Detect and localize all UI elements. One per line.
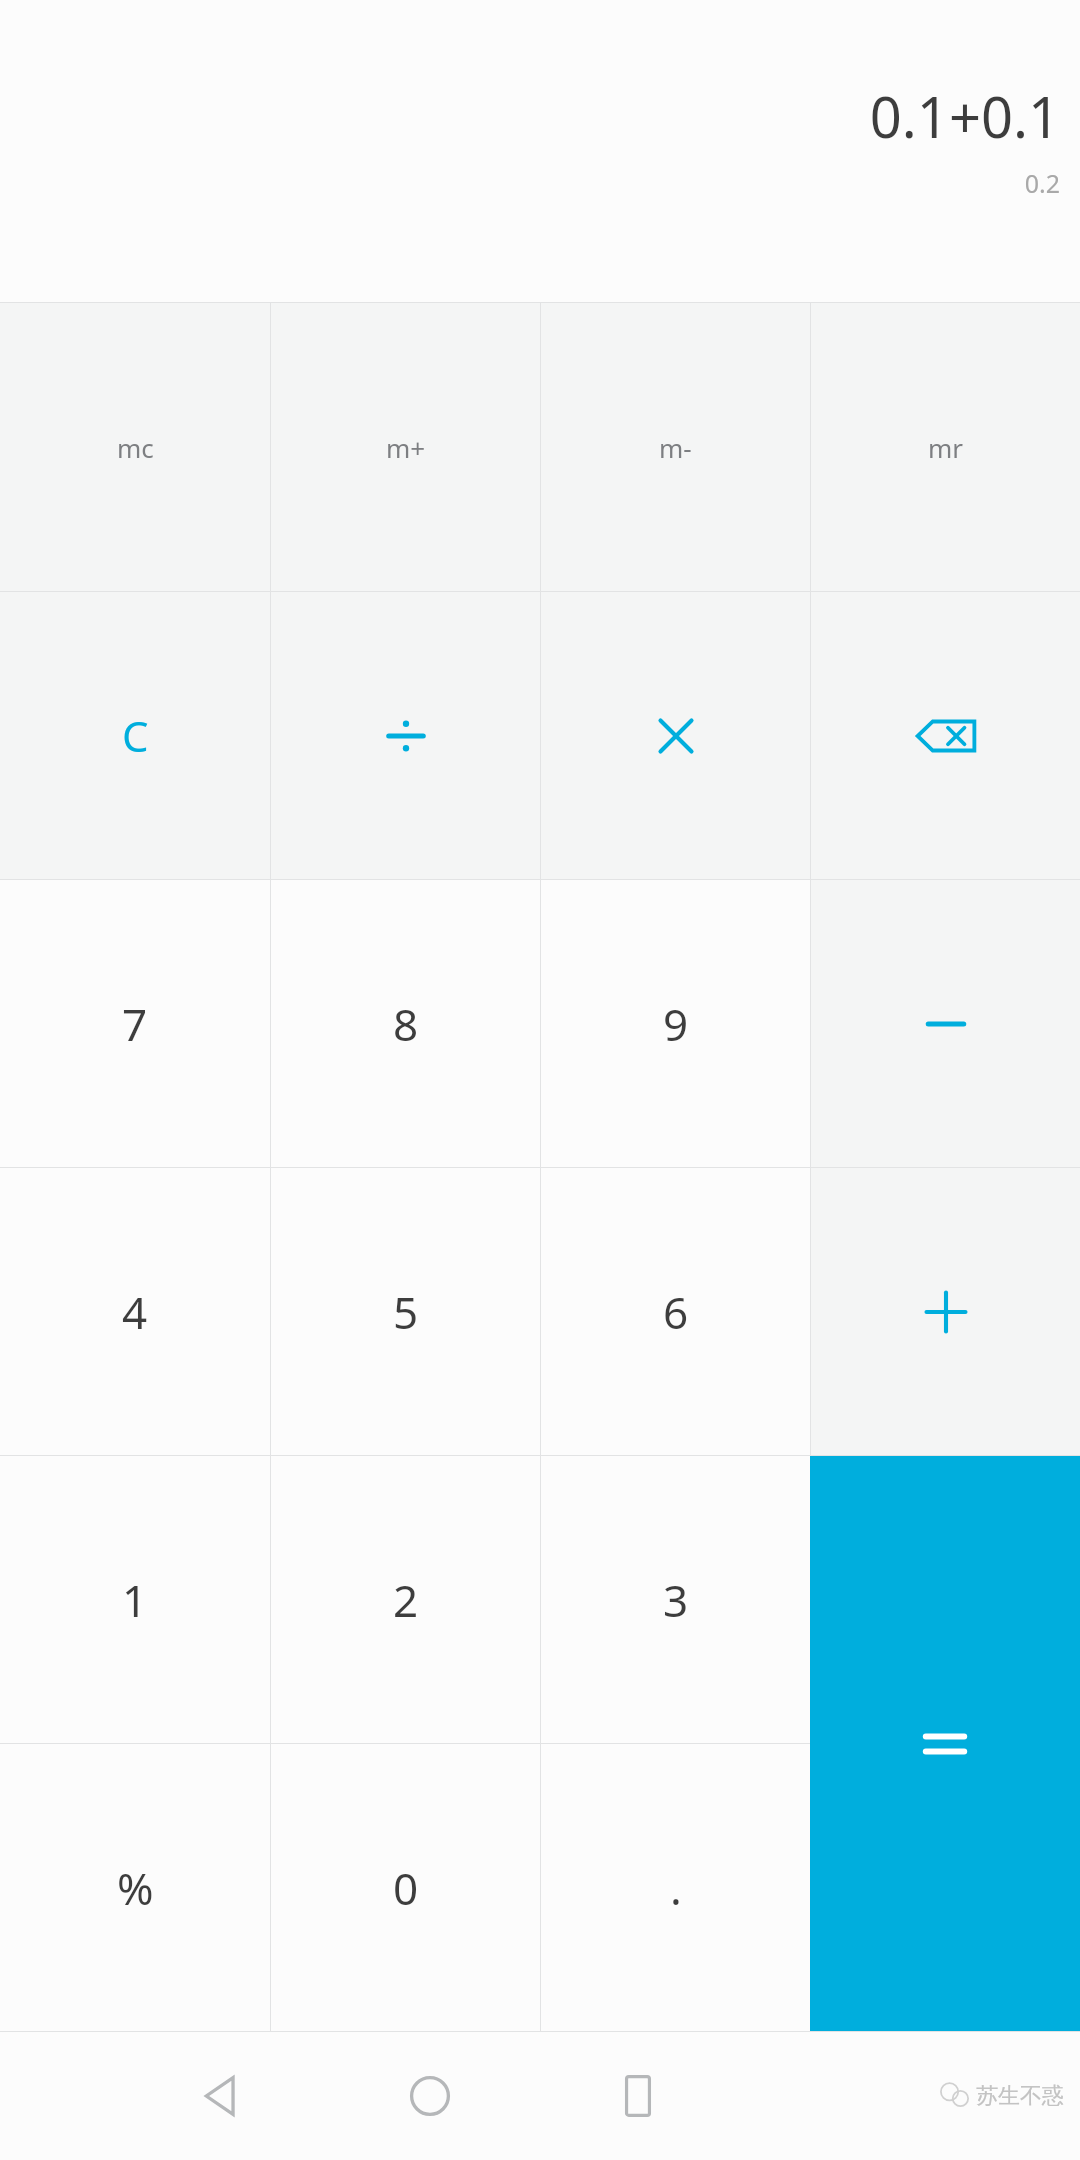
staticText: C [122,707,149,764]
button[interactable]: % [0,1744,270,2031]
button[interactable]: m+ [271,303,540,591]
button[interactable]: . [541,1744,810,2031]
button[interactable]: Back [172,2046,272,2146]
staticText: 0.1+0.1 [869,78,1060,154]
button[interactable]: 5 [271,1168,540,1455]
button[interactable]: Equals [810,1456,1080,2031]
button[interactable]: 9 [541,880,810,1167]
button[interactable]: 6 [541,1168,810,1455]
staticText: 4 [122,1282,148,1342]
staticText: 苏生不惑 [976,2082,1064,2110]
staticText: 0 [393,1858,419,1918]
button[interactable]: Plus [811,1168,1080,1455]
staticText: % [117,1858,154,1918]
button[interactable]: mc [0,303,270,591]
staticText: 9 [663,994,689,1054]
button[interactable]: Home [380,2046,480,2146]
button[interactable]: 0 [271,1744,540,2031]
staticText: mr [928,430,964,465]
button[interactable]: m- [541,303,810,591]
button[interactable]: mr [811,303,1080,591]
staticText: 1 [122,1570,148,1630]
staticText: 0.2 [1024,166,1060,200]
button[interactable]: Backspace [811,592,1080,879]
staticText: m- [659,430,692,465]
button[interactable]: 1 [0,1456,270,1743]
staticText: 3 [663,1570,689,1630]
staticText: 5 [393,1282,419,1342]
button[interactable]: 7 [0,880,270,1167]
button[interactable]: 3 [541,1456,810,1743]
button[interactable]: Recents [588,2046,688,2146]
button[interactable]: Divide [271,592,540,879]
staticText: 6 [663,1282,689,1342]
button[interactable]: Clear [0,592,270,879]
staticText: 8 [393,994,419,1054]
button[interactable]: 4 [0,1168,270,1455]
staticText: mc [117,430,154,465]
staticText: 7 [122,994,148,1054]
button[interactable]: 2 [271,1456,540,1743]
button[interactable]: Minus [811,880,1080,1167]
button[interactable]: Multiply [541,592,810,879]
staticText: . [670,1858,682,1918]
button[interactable]: 8 [271,880,540,1167]
staticText: 2 [393,1570,419,1630]
staticText: m+ [386,430,426,465]
